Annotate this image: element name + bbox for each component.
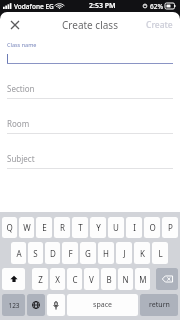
staticText: Section [7, 83, 35, 94]
button[interactable]: K [134, 242, 150, 264]
staticText: L [158, 248, 163, 259]
button[interactable]: O [144, 217, 160, 238]
button[interactable]: Section [7, 83, 173, 99]
button[interactable]: Y [90, 217, 106, 238]
staticText: D [50, 248, 56, 259]
button[interactable]: U [108, 217, 124, 238]
button[interactable]: Close [6, 16, 24, 34]
staticText: Vodafone EG [14, 2, 54, 11]
button[interactable]: M [135, 268, 150, 290]
staticText: K [140, 248, 145, 259]
staticText: M [139, 274, 147, 285]
button[interactable]: C [67, 268, 82, 290]
button[interactable]: V [84, 268, 99, 290]
staticText: Create class [62, 18, 118, 32]
button[interactable]: Z [32, 268, 48, 290]
button[interactable]: Dictate [47, 294, 65, 316]
button[interactable]: X [50, 268, 65, 290]
button[interactable]: I [126, 217, 142, 238]
button[interactable]: Delete [156, 268, 178, 290]
button[interactable]: D [45, 242, 60, 264]
staticText: Z [38, 274, 43, 285]
button[interactable]: W [19, 217, 34, 238]
staticText: Class name [7, 41, 37, 48]
staticText: C [72, 274, 78, 285]
button[interactable]: Room [7, 118, 173, 134]
button[interactable]: Q [2, 217, 17, 238]
staticText: 123 [8, 301, 20, 310]
button[interactable]: Subject [7, 153, 173, 169]
button[interactable]: P [162, 217, 178, 238]
button[interactable]: H [98, 242, 114, 264]
button[interactable]: E [36, 217, 52, 238]
button[interactable]: J [116, 242, 132, 264]
staticText: Room [7, 118, 30, 129]
button[interactable]: Class name [7, 41, 173, 64]
staticText: 62% [150, 2, 163, 11]
staticText: S [33, 248, 38, 259]
button[interactable]: return [140, 294, 178, 316]
button[interactable]: A [11, 242, 26, 264]
staticText: T [78, 222, 83, 233]
staticText: G [85, 248, 91, 259]
button[interactable]: B [101, 268, 116, 290]
button[interactable]: G [80, 242, 96, 264]
staticText: Y [96, 222, 101, 233]
staticText: O [149, 222, 156, 233]
staticText: Q [6, 222, 13, 233]
button[interactable]: Change keyboard [27, 294, 45, 316]
staticText: P [168, 222, 173, 233]
button[interactable]: R [54, 217, 70, 238]
staticText: B [106, 274, 112, 285]
button[interactable]: Shift [2, 268, 25, 290]
staticText: J [123, 248, 126, 259]
staticText: A [16, 248, 22, 259]
button[interactable]: 123 [2, 294, 25, 316]
staticText: space [93, 300, 112, 310]
staticText: F [68, 248, 73, 259]
staticText: 2:53 PM [89, 1, 116, 11]
staticText: X [55, 274, 60, 285]
staticText: E [42, 222, 47, 233]
button[interactable]: F [62, 242, 78, 264]
button[interactable]: space [67, 294, 138, 316]
staticText: I [133, 222, 136, 233]
staticText: W [23, 222, 31, 233]
staticText: Subject [7, 153, 35, 164]
staticText: V [89, 274, 94, 285]
button[interactable]: T [72, 217, 88, 238]
staticText: return [149, 300, 170, 310]
button[interactable]: L [152, 242, 168, 264]
button[interactable]: Create [143, 16, 176, 34]
staticText: N [122, 274, 129, 285]
staticText: U [113, 222, 119, 233]
staticText: R [60, 222, 65, 233]
staticText: Create [146, 19, 173, 31]
button[interactable]: S [28, 242, 43, 264]
button[interactable]: N [118, 268, 133, 290]
staticText: H [103, 248, 109, 259]
